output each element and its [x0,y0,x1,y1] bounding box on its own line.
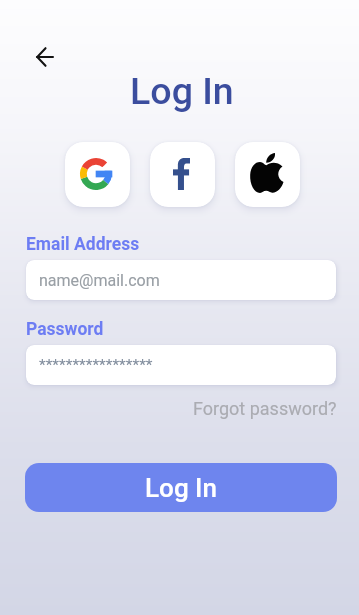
button[interactable]: Sign in with Facebook [150,142,215,207]
button[interactable]: Log In [25,463,337,512]
button[interactable]: Sign in with Apple [235,142,300,207]
button[interactable]: Sign in with Google [65,142,130,207]
button[interactable]: ***************** [26,345,336,385]
staticText: ***************** [39,356,153,374]
staticText: Log In [145,473,217,503]
staticText: name@mail.com [39,271,160,290]
staticText: Email Address [26,234,140,255]
staticText: Password [26,319,104,340]
button[interactable]: Back [27,39,63,75]
staticText: Log In [130,69,234,113]
button[interactable]: Forgot password? [193,398,337,419]
button[interactable]: name@mail.com [26,260,336,300]
